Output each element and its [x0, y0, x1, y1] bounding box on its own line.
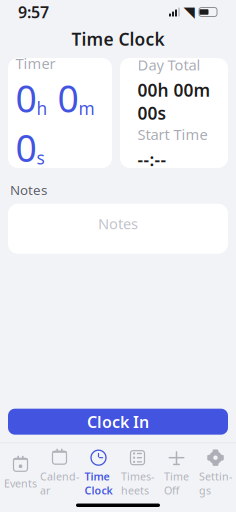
- staticText: Events: [4, 476, 37, 490]
- staticText: Day Total: [137, 55, 200, 74]
- staticText: Calendar: [40, 469, 79, 497]
- button[interactable]: Clock In: [8, 409, 228, 435]
- staticText: Time Clock: [84, 469, 112, 497]
- staticText: Notes: [10, 181, 47, 199]
- staticText: Settings: [199, 469, 232, 497]
- staticText: Time Off: [164, 469, 189, 497]
- staticText: ◥: [183, 4, 194, 20]
- button[interactable]: Time Clock: [79, 443, 118, 499]
- staticText: Timesheets: [121, 469, 154, 497]
- button[interactable]: Settings: [196, 443, 235, 499]
- staticText: 0: [15, 123, 36, 172]
- staticText: Clock In: [87, 411, 149, 432]
- button[interactable]: Time Off: [157, 443, 196, 499]
- staticText: 0: [15, 73, 36, 123]
- staticText: 9:57: [18, 1, 49, 23]
- button[interactable]: Events: [1, 450, 40, 492]
- staticText: --:--: [137, 148, 166, 171]
- staticText: h: [36, 97, 47, 120]
- staticText: 0: [57, 73, 78, 123]
- staticText: Timer: [15, 54, 55, 73]
- button[interactable]: Timesheets: [118, 443, 157, 499]
- button[interactable]: Calendar: [40, 443, 79, 499]
- staticText: Notes: [98, 214, 138, 233]
- staticText: s: [36, 146, 44, 169]
- staticText: m: [78, 97, 94, 120]
- staticText: Start Time: [137, 124, 207, 144]
- staticText: 00h 00m 00s: [137, 78, 210, 124]
- staticText: Time Clock: [71, 27, 164, 50]
